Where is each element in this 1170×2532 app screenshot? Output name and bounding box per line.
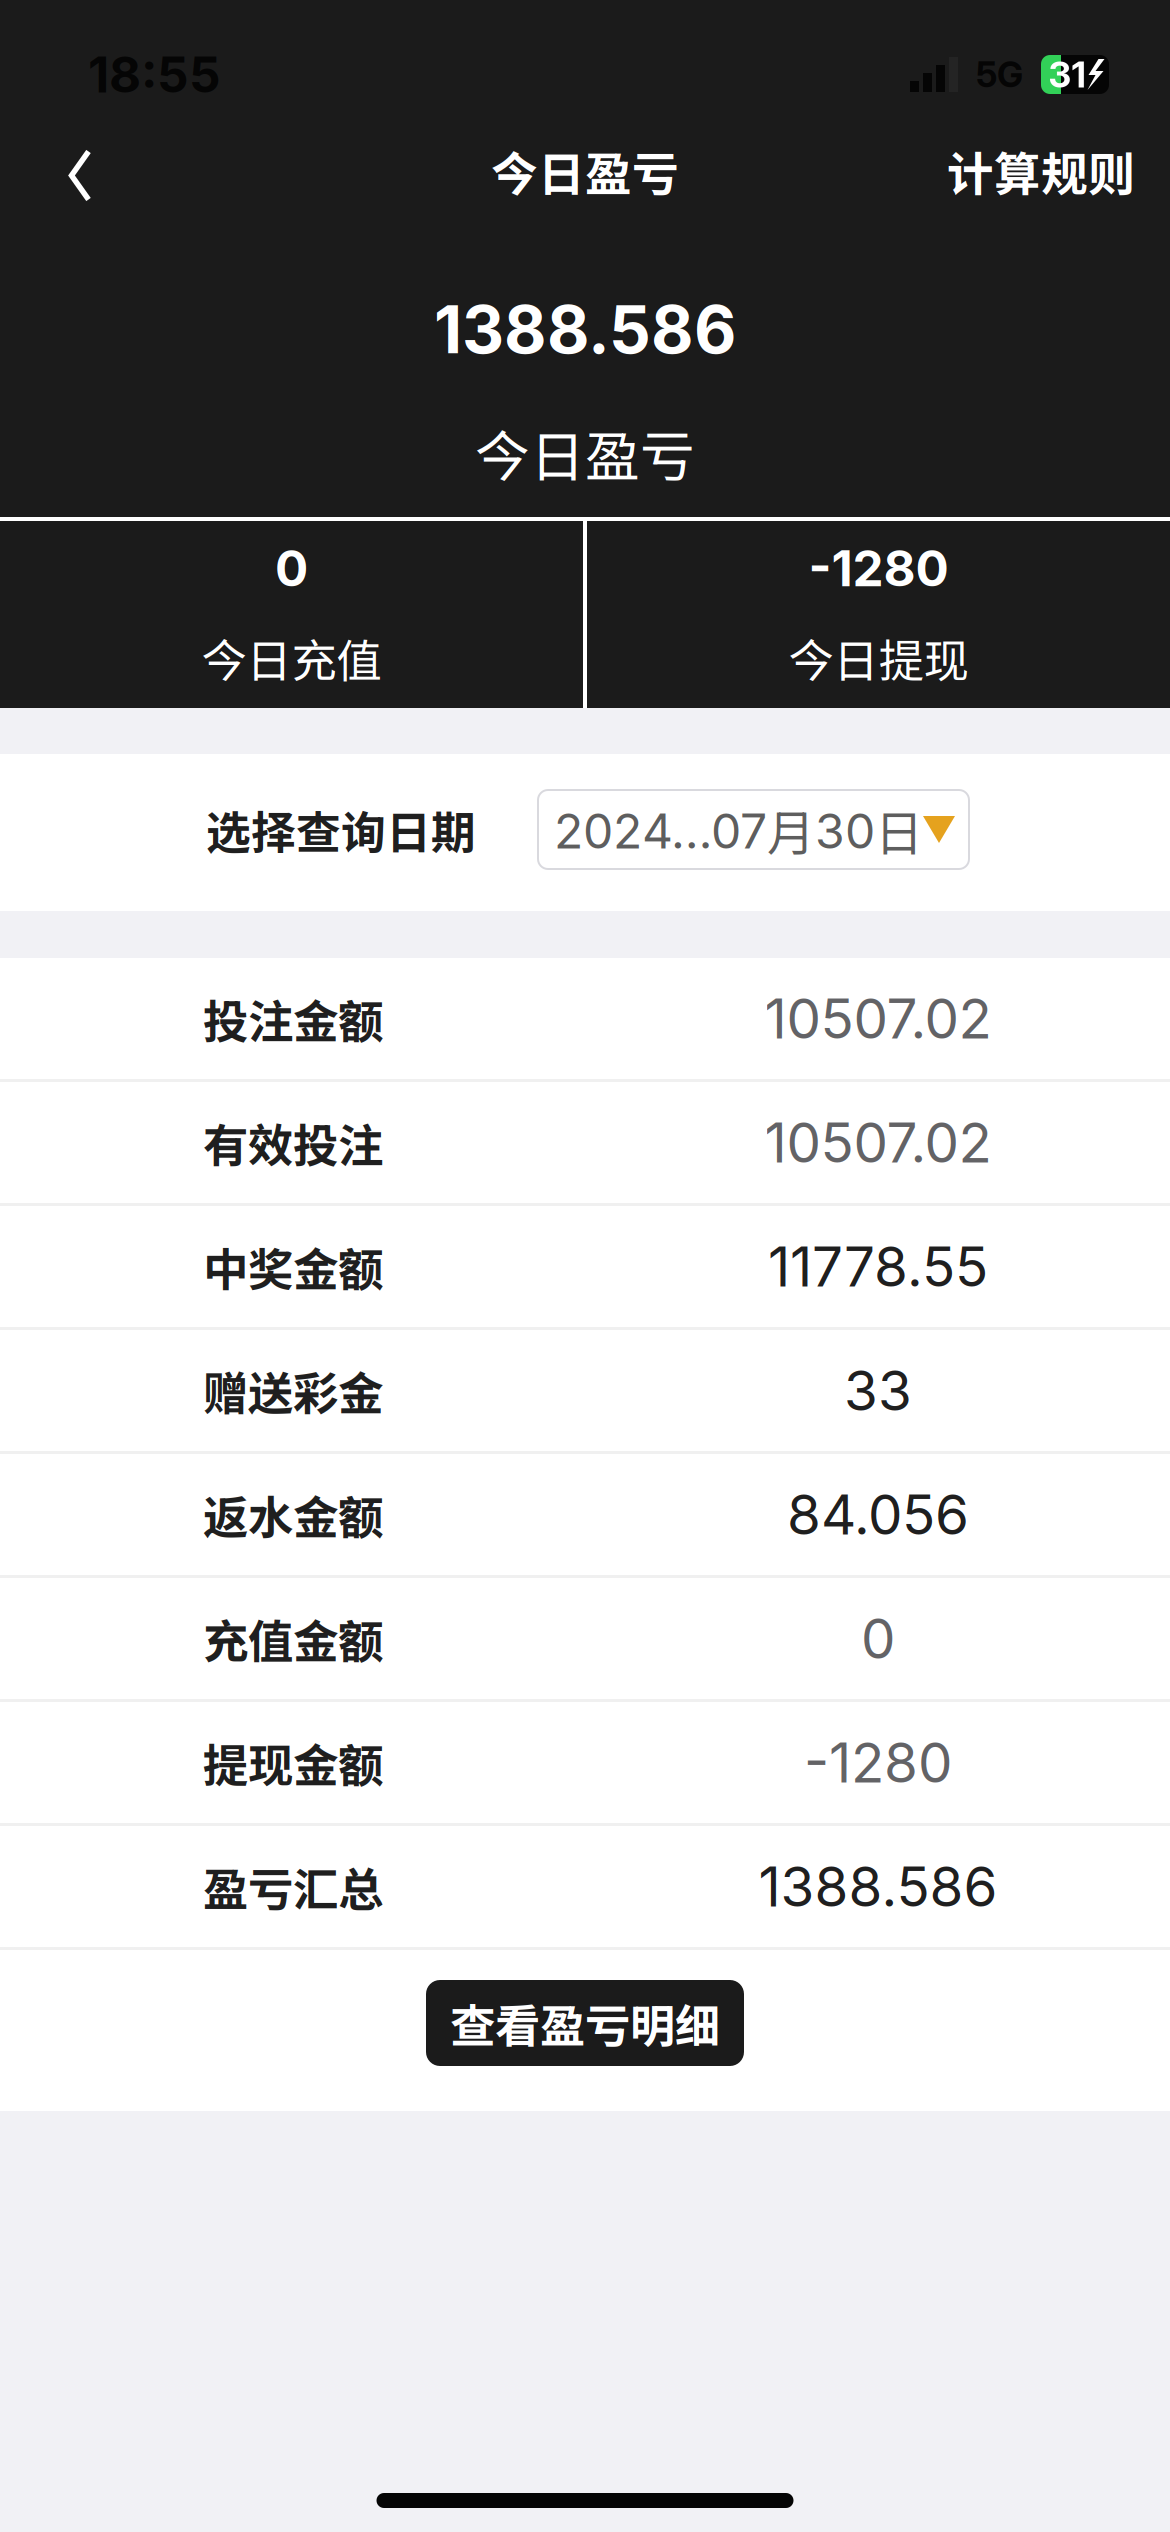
staticText: 提现金额 (203, 1730, 383, 1795)
staticText: 赠送彩金 (203, 1358, 383, 1423)
staticText: 2024…07月30日 (554, 795, 923, 864)
staticText: 0 (275, 538, 308, 598)
staticText: 今日提现 (788, 625, 968, 691)
staticText: 5G (976, 53, 1023, 96)
staticText: 11778.55 (768, 1233, 988, 1299)
staticText: 31 (1048, 53, 1085, 96)
button[interactable]: 返回 (34, 120, 126, 221)
staticText: 84.056 (787, 1481, 969, 1547)
staticText: 今日充值 (201, 625, 381, 691)
staticText: 10507.02 (764, 1109, 991, 1175)
staticText: 今日盈亏 (475, 413, 695, 492)
staticText: 0 (861, 1605, 895, 1671)
staticText: 1388.586 (758, 1853, 997, 1919)
button[interactable]: 2024…07月30日 (538, 790, 969, 869)
staticText: 返水金额 (203, 1482, 383, 1547)
staticText: 33 (844, 1357, 912, 1423)
staticText: 10507.02 (764, 985, 991, 1051)
button[interactable]: 查看盈亏明细 (426, 1980, 744, 2066)
staticText: 中奖金额 (203, 1234, 383, 1299)
staticText: 有效投注 (203, 1110, 383, 1175)
staticText: 选择查询日期 (206, 797, 476, 862)
staticText: 投注金额 (203, 986, 383, 1051)
staticText: 计算规则 (947, 137, 1135, 205)
staticText: 充值金额 (203, 1606, 383, 1671)
staticText: 1388.586 (434, 290, 736, 369)
staticText: 查看盈亏明细 (450, 1990, 720, 2056)
staticText: -1280 (804, 1729, 952, 1795)
staticText: 18:55 (88, 45, 221, 104)
staticText: 盈亏汇总 (203, 1854, 383, 1919)
button[interactable]: 计算规则 (927, 125, 1155, 217)
staticText: -1280 (808, 538, 948, 598)
staticText: 今日盈亏 (491, 137, 679, 205)
